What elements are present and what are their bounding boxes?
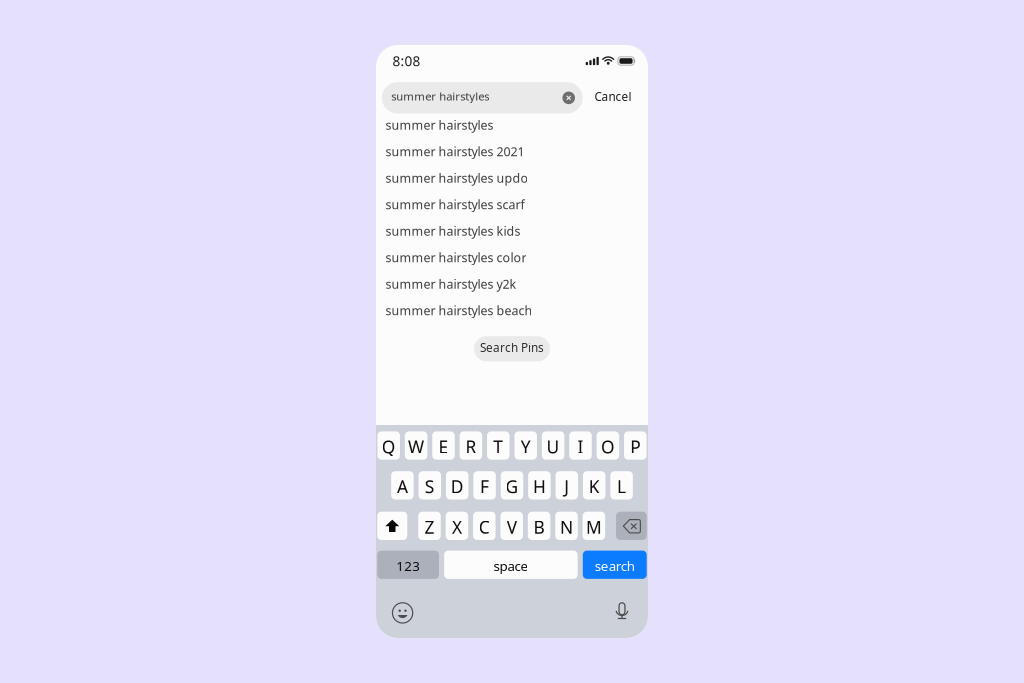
button[interactable]: Y (514, 431, 537, 460)
staticText: M (586, 515, 602, 539)
staticText: summer hairstyles beach (385, 302, 532, 319)
staticText: A (397, 475, 408, 498)
staticText: X (452, 515, 462, 539)
staticText: summer hairstyles y2k (385, 276, 516, 292)
button[interactable]: Delete (616, 512, 647, 540)
button[interactable]: Emoji keyboard (390, 600, 416, 626)
staticText: summer hairstyles kids (385, 223, 520, 239)
staticText: H (533, 475, 546, 498)
button[interactable]: T (487, 431, 509, 460)
button[interactable]: X (446, 512, 468, 540)
button[interactable]: Shift (377, 512, 407, 540)
button[interactable]: E (432, 431, 455, 460)
staticText: space (493, 557, 528, 575)
staticText: Z (424, 515, 434, 539)
button[interactable]: P (624, 431, 646, 460)
button[interactable]: summer hairstyles beach (376, 299, 648, 325)
button[interactable]: space (444, 551, 578, 579)
staticText: V (507, 515, 517, 539)
button[interactable]: I (569, 431, 592, 460)
button[interactable]: summer hairstyles y2k (376, 272, 648, 299)
staticText: T (493, 435, 503, 458)
staticText: W (408, 435, 424, 458)
button[interactable]: K (583, 471, 605, 499)
staticText: D (451, 475, 464, 498)
button[interactable]: H (528, 471, 551, 499)
staticText: E (438, 435, 448, 458)
button[interactable]: D (446, 471, 468, 499)
staticText: I (577, 435, 583, 458)
button[interactable]: F (473, 471, 496, 499)
button[interactable]: C (473, 512, 496, 540)
staticText: summer hairstyles 2021 (385, 143, 524, 160)
staticText: Cancel (594, 89, 631, 105)
staticText: summer hairstyles color (385, 249, 526, 266)
button[interactable]: U (542, 431, 564, 460)
button[interactable]: Cancel (594, 82, 631, 113)
staticText: 8:08 (392, 52, 420, 70)
staticText: P (630, 435, 640, 458)
staticText: summer hairstyles (391, 88, 489, 104)
staticText: search (595, 557, 635, 575)
button[interactable]: summer hairstyles 2021 (376, 140, 648, 166)
staticText: F (480, 475, 489, 498)
staticText: Y (521, 435, 531, 458)
staticText: summer hairstyles updo (385, 170, 528, 186)
button[interactable]: B (528, 512, 550, 540)
staticText: N (560, 515, 573, 539)
staticText: summer hairstyles (385, 117, 493, 133)
button[interactable]: 123 (377, 551, 439, 579)
button[interactable]: summer hairstyles color (376, 246, 648, 272)
button[interactable]: L (610, 471, 633, 499)
button[interactable]: O (597, 431, 619, 460)
button[interactable]: summer hairstyles (376, 113, 648, 140)
button[interactable]: Clear search text (561, 90, 576, 105)
staticText: J (564, 475, 569, 498)
staticText: U (547, 435, 560, 458)
staticText: C (479, 515, 490, 539)
button[interactable]: Search Pins (474, 336, 550, 361)
button[interactable]: M (583, 512, 605, 540)
staticText: 123 (396, 557, 420, 575)
button[interactable]: R (460, 431, 482, 460)
button[interactable]: A (391, 471, 414, 499)
button[interactable]: V (500, 512, 523, 540)
button[interactable]: G (501, 471, 523, 499)
button[interactable]: summer hairstyles updo (376, 166, 648, 193)
staticText: L (617, 475, 626, 498)
staticText: B (534, 515, 545, 539)
button[interactable]: J (555, 471, 578, 499)
staticText: Search Pins (480, 339, 544, 355)
staticText: S (425, 475, 435, 498)
button[interactable]: Q (377, 431, 400, 460)
button[interactable]: Dictation (609, 600, 635, 626)
button[interactable]: Z (418, 512, 441, 540)
staticText: G (505, 475, 518, 498)
staticText: O (601, 435, 615, 458)
button[interactable]: N (555, 512, 578, 540)
staticText: Q (382, 435, 396, 458)
button[interactable]: search (583, 551, 647, 579)
staticText: K (589, 475, 600, 498)
button[interactable]: summer hairstyles scarf (376, 193, 648, 219)
button[interactable]: S (418, 471, 441, 499)
button[interactable]: W (405, 431, 427, 460)
staticText: summer hairstyles scarf (385, 196, 524, 213)
button[interactable]: summer hairstyles kids (376, 219, 648, 246)
staticText: R (465, 435, 476, 458)
